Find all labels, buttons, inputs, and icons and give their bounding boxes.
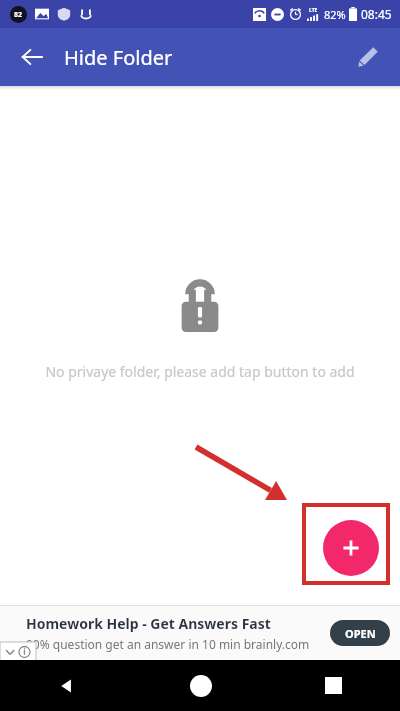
- button[interactable]: Home: [134, 660, 267, 711]
- staticText: 82: [14, 10, 23, 20]
- staticText: Homework Help - Get Answers Fast: [26, 614, 271, 633]
- button[interactable]: Back: [0, 660, 134, 711]
- staticText: No privaye folder, please add tap button…: [45, 362, 355, 381]
- staticText: LTE: [309, 7, 318, 14]
- staticText: OPEN: [345, 626, 376, 641]
- staticText: 08:45: [361, 6, 392, 22]
- staticText: 90% question get an answer in 10 min bra…: [26, 636, 310, 652]
- button[interactable]: Back: [10, 35, 54, 79]
- staticText: Hide Folder: [64, 44, 173, 71]
- button[interactable]: Edit: [346, 35, 390, 79]
- button[interactable]: OPEN: [330, 620, 390, 646]
- staticText: 82%: [324, 7, 346, 22]
- button[interactable]: Recent apps: [267, 660, 400, 711]
- button[interactable]: Add: [323, 520, 379, 576]
- button[interactable]: Ad choices: [0, 642, 36, 662]
